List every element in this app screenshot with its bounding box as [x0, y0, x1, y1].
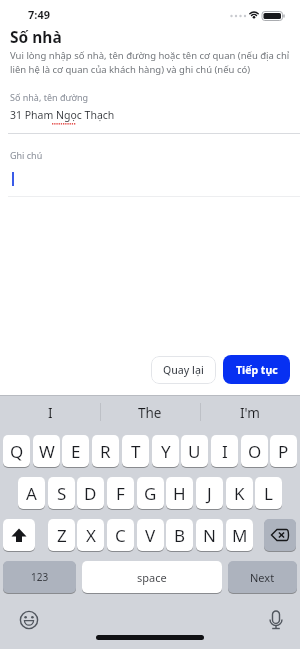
button[interactable]: 123	[3, 561, 76, 593]
button[interactable]: L	[255, 477, 282, 509]
button[interactable]: N	[196, 519, 223, 551]
staticText: Số nhà, tên đường	[10, 91, 89, 103]
button[interactable]: I	[0, 399, 100, 427]
button[interactable]: I'm	[200, 399, 300, 427]
staticText: T	[131, 440, 141, 463]
staticText: Vui lòng nhập số nhà, tên đường hoặc tên…	[10, 49, 296, 75]
staticText: 7:49	[28, 7, 50, 22]
staticText: G	[144, 482, 157, 505]
staticText: I	[48, 404, 53, 422]
button[interactable]: D	[77, 477, 104, 509]
staticText: Y	[161, 440, 171, 463]
button[interactable]: Z	[48, 519, 75, 551]
staticText: P	[278, 440, 289, 463]
button[interactable]: S	[48, 477, 75, 509]
staticText: F	[116, 482, 125, 505]
button[interactable]: R	[92, 435, 119, 467]
button[interactable]: X	[77, 519, 104, 551]
button[interactable]: F	[107, 477, 134, 509]
staticText: V	[145, 524, 156, 547]
staticText: O	[248, 440, 262, 463]
staticText: 123	[31, 570, 49, 584]
button[interactable]: U	[181, 435, 208, 467]
staticText: E	[71, 440, 81, 463]
staticText: M	[232, 524, 248, 547]
button[interactable]: space	[82, 561, 222, 593]
button[interactable]: O	[241, 435, 268, 467]
staticText: A	[26, 482, 37, 505]
staticText: Tiếp tục	[236, 363, 278, 377]
staticText: Số nhà	[10, 26, 62, 47]
staticText: H	[173, 482, 186, 505]
button[interactable]: C	[107, 519, 134, 551]
staticText: 31 Pham Ngọc Thạch	[10, 108, 115, 122]
button[interactable]: V	[137, 519, 164, 551]
button[interactable]: The	[100, 399, 200, 427]
staticText: space	[137, 570, 167, 585]
button[interactable]: H	[166, 477, 193, 509]
button[interactable]: T	[122, 435, 149, 467]
button[interactable]: J	[196, 477, 223, 509]
staticText: K	[234, 482, 245, 505]
staticText: Ghi chú	[10, 149, 43, 161]
staticText: R	[100, 440, 111, 463]
button[interactable]	[3, 519, 35, 551]
staticText: J	[207, 482, 212, 505]
staticText: D	[84, 482, 97, 505]
staticText: Z	[57, 524, 67, 547]
button[interactable]: E	[62, 435, 89, 467]
button[interactable]: Next	[228, 561, 297, 593]
button[interactable]: A	[18, 477, 45, 509]
staticText: I'm	[240, 404, 260, 422]
button[interactable]: Quay lại	[151, 356, 216, 384]
staticText: The	[138, 404, 162, 422]
button[interactable]: M	[226, 519, 253, 551]
button[interactable]: Q	[3, 435, 30, 467]
button[interactable]: Y	[152, 435, 179, 467]
staticText: I	[222, 440, 228, 463]
button[interactable]: W	[33, 435, 60, 467]
button[interactable]: G	[137, 477, 164, 509]
button[interactable]: I	[211, 435, 238, 467]
staticText: X	[86, 524, 96, 547]
staticText: L	[264, 482, 273, 505]
staticText: W	[39, 440, 55, 463]
staticText: S	[57, 482, 67, 505]
button[interactable]: Tiếp tục	[223, 355, 290, 384]
staticText: Quay lại	[163, 363, 204, 377]
staticText: Next	[250, 570, 275, 585]
button[interactable]: P	[270, 435, 297, 467]
staticText: U	[188, 440, 201, 463]
button[interactable]: K	[226, 477, 253, 509]
staticText: B	[174, 524, 186, 547]
staticText: Q	[10, 440, 24, 463]
button[interactable]	[264, 519, 296, 551]
button[interactable]: B	[166, 519, 193, 551]
staticText: N	[203, 524, 216, 547]
staticText: C	[115, 524, 126, 547]
